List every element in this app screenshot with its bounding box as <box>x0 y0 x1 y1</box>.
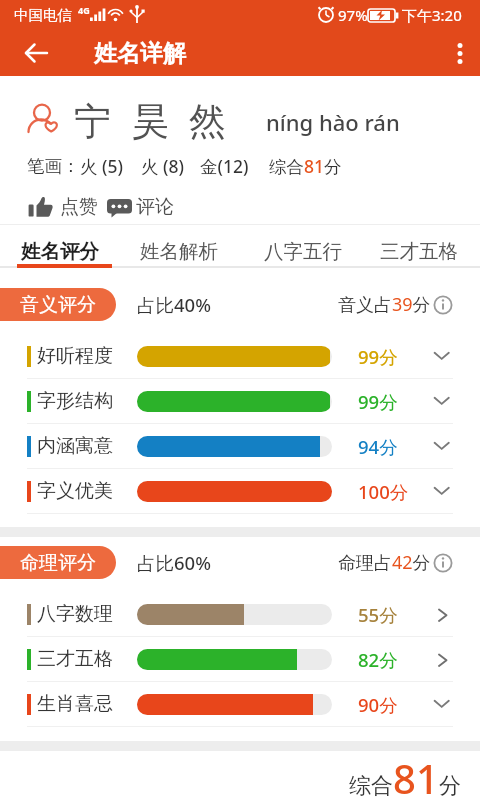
staticText: 55分 <box>358 602 398 627</box>
staticText: 97% <box>338 5 368 25</box>
staticText: 100分 <box>358 479 409 504</box>
staticText: 综合 <box>349 772 393 800</box>
staticText: 好听程度 <box>37 344 113 368</box>
staticText: 三才五格 <box>37 647 113 671</box>
staticText: 昊 <box>132 98 169 144</box>
staticText: 分 <box>439 772 461 800</box>
staticText: 火 (8) <box>141 154 184 178</box>
staticText: 八字五行 <box>264 239 342 264</box>
staticText: 音义评分 <box>20 293 96 317</box>
staticText: 火 (5) <box>80 154 123 178</box>
staticText: 下午3:20 <box>402 5 462 25</box>
staticText: 笔画： <box>27 155 80 177</box>
staticText: 占比60% <box>137 550 211 575</box>
staticText: 姓名评分 <box>21 239 99 264</box>
staticText: 八字数理 <box>37 602 113 626</box>
staticText: 82分 <box>358 647 398 672</box>
staticText: 94分 <box>358 434 398 459</box>
staticText: níng hào rán <box>266 107 400 137</box>
staticText: 4G <box>78 4 90 16</box>
staticText: 内涵寓意 <box>37 434 113 458</box>
staticText: 字形结构 <box>37 389 113 413</box>
staticText: 占比40% <box>137 292 211 317</box>
staticText: 综合81分 <box>269 154 342 178</box>
staticText: 然 <box>189 98 226 144</box>
staticText: 90分 <box>358 692 398 717</box>
staticText: 音义占39分 <box>338 292 431 317</box>
staticText: 99分 <box>358 344 398 369</box>
staticText: 99分 <box>358 389 398 414</box>
staticText: 中国电信 <box>14 6 72 24</box>
staticText: 宁 <box>74 98 111 144</box>
staticText: 评论 <box>136 195 174 219</box>
staticText: 字义优美 <box>37 479 113 503</box>
staticText: 命理评分 <box>20 551 96 575</box>
staticText: 81 <box>393 751 439 800</box>
staticText: 三才五格 <box>380 239 458 264</box>
staticText: 姓名解析 <box>140 239 218 264</box>
staticText: 命理占42分 <box>338 550 431 575</box>
staticText: 点赞 <box>60 195 98 219</box>
staticText: 生肖喜忌 <box>37 692 113 716</box>
staticText: 金(12) <box>200 154 249 178</box>
staticText: 姓名详解 <box>94 39 186 68</box>
